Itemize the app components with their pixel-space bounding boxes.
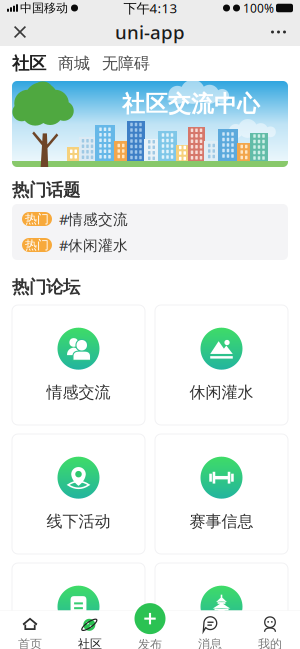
button[interactable]: 热门 [12, 233, 288, 257]
staticText: 社区 [78, 637, 102, 649]
staticText: 消息 [198, 637, 222, 649]
button[interactable]: 我的 [240, 614, 300, 649]
button[interactable]: 首页 [0, 614, 60, 649]
staticText: 热门 [25, 238, 49, 252]
button[interactable]: 发布 [120, 614, 180, 649]
button[interactable]: 线下活动 [12, 434, 145, 554]
staticText: 休闲灌水 [189, 383, 253, 402]
staticText: #情感交流 [59, 209, 128, 229]
button[interactable]: 社区 [12, 53, 58, 74]
staticText: uni-app [115, 20, 185, 44]
button[interactable]: 情感交流 [12, 305, 145, 425]
staticText: 社区交流中心 [122, 90, 260, 118]
staticText: 下午4:13 [123, 0, 177, 17]
staticText: 商城 [58, 54, 90, 73]
button[interactable]: 热门 [12, 207, 288, 231]
button[interactable]: 商城 [58, 54, 102, 73]
staticText: 发布 [138, 637, 162, 649]
staticText: 中国移动 [20, 1, 68, 15]
staticText: 社区 [12, 53, 46, 74]
staticText: 情感交流 [46, 383, 110, 402]
staticText: 热门话题 [12, 179, 80, 201]
staticText: 我的 [258, 637, 282, 649]
button[interactable]: More [263, 19, 294, 44]
staticText: 赛事信息 [189, 512, 253, 531]
button[interactable]: 无障碍 [102, 54, 150, 73]
button[interactable]: 二手交易 [12, 563, 145, 649]
button[interactable]: Close [6, 18, 34, 46]
staticText: 100% [243, 0, 274, 16]
button[interactable]: 城市生活 [155, 563, 288, 649]
staticText: 二手交易 [46, 641, 110, 649]
staticText: 热门 [25, 212, 49, 226]
button[interactable]: 休闲灌水 [155, 305, 288, 425]
staticText: 线下活动 [46, 512, 110, 531]
staticText: 热门论坛 [12, 276, 80, 298]
staticText: 首页 [18, 637, 42, 649]
button[interactable]: 消息 [180, 614, 240, 649]
staticText: #休闲灌水 [59, 235, 128, 255]
button[interactable]: 赛事信息 [155, 434, 288, 554]
staticText: 无障碍 [102, 54, 150, 73]
button[interactable]: 社区 [60, 614, 120, 649]
staticText: 城市生活 [189, 641, 253, 649]
